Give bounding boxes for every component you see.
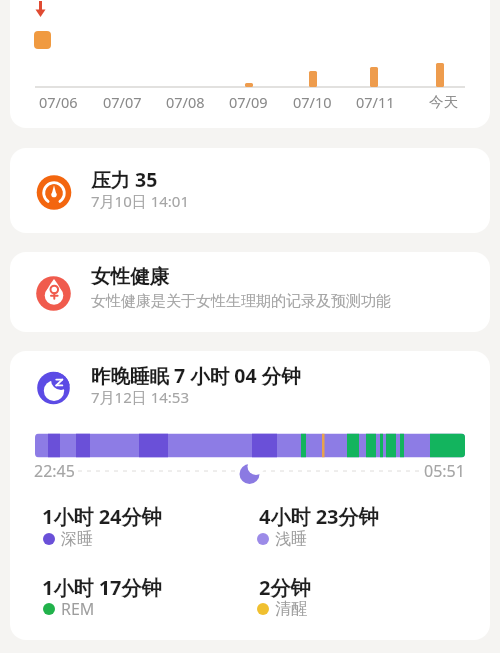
button[interactable]: 07/06 <box>10 0 490 128</box>
button[interactable]: 昨晚睡眠 7 小时 04 分钟 <box>10 351 490 640</box>
staticText: 1小时 17分钟 <box>42 574 162 601</box>
staticText: 07/06 <box>39 92 78 112</box>
staticText: 7月10日 14:01 <box>91 191 189 211</box>
staticText: 昨晚睡眠 7 小时 04 分钟 <box>91 362 301 389</box>
button[interactable]: 压力 35 <box>10 148 490 233</box>
button[interactable]: 女性健康 <box>10 252 490 332</box>
staticText: 深睡 <box>61 529 93 549</box>
staticText: 清醒 <box>275 599 307 619</box>
staticText: 07/09 <box>229 92 268 112</box>
staticText: 7月12日 14:53 <box>91 387 189 407</box>
staticText: 07/08 <box>166 92 205 112</box>
staticText: 05:51 <box>424 460 465 482</box>
staticText: 07/07 <box>103 92 142 112</box>
staticText: 22:45 <box>34 460 75 482</box>
staticText: 女性健康是关于女性生理期的记录及预测功能 <box>91 292 391 311</box>
staticText: 07/11 <box>356 92 395 112</box>
staticText: 1小时 24分钟 <box>42 503 162 530</box>
staticText: 女性健康 <box>91 264 169 289</box>
staticText: 07/10 <box>293 92 332 112</box>
staticText: 今天 <box>429 93 458 111</box>
staticText: REM <box>61 598 95 620</box>
staticText: 压力 35 <box>91 166 158 193</box>
staticText: 浅睡 <box>275 529 307 549</box>
staticText: 4小时 23分钟 <box>259 503 379 530</box>
staticText: 2分钟 <box>259 574 311 601</box>
